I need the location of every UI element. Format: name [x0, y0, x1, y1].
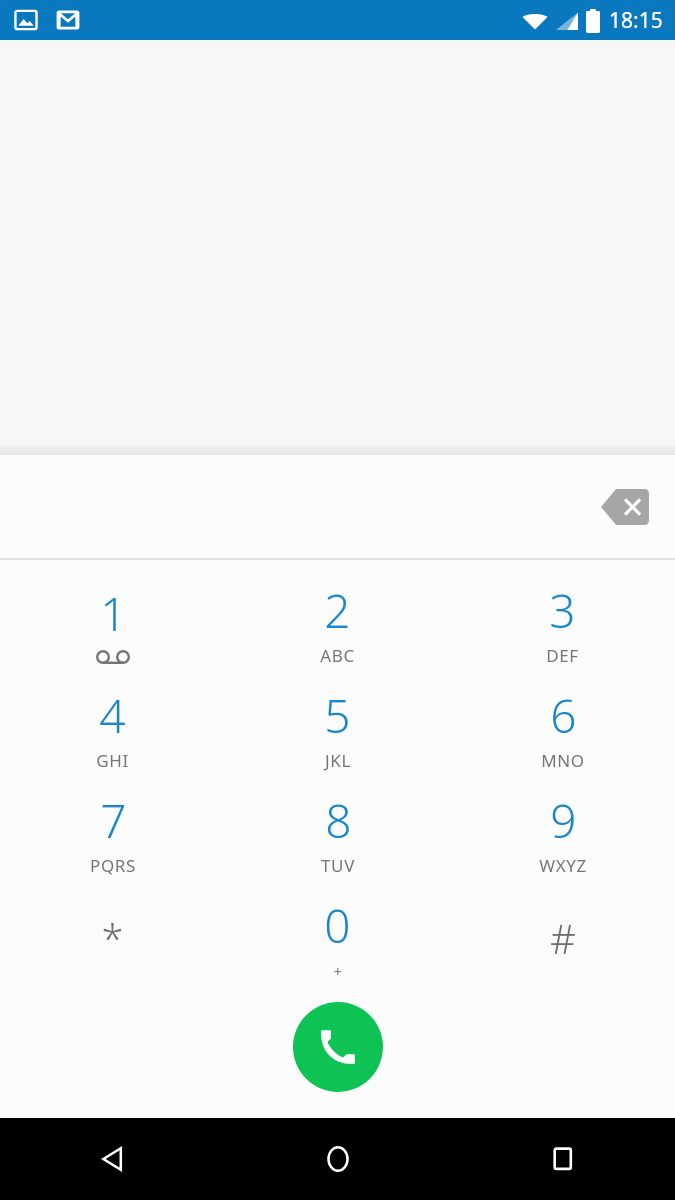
button[interactable]: 4 [0, 675, 225, 780]
button[interactable]: Backspace [593, 478, 657, 536]
button[interactable]: Recent apps [450, 1118, 675, 1200]
button[interactable]: 9 [450, 780, 675, 885]
staticText: 18:15 [609, 6, 663, 35]
staticText: 6 [550, 684, 577, 747]
staticText: WXYZ [539, 854, 587, 877]
staticText: + [333, 961, 343, 981]
button[interactable]: 8 [225, 780, 450, 885]
staticText: 3 [549, 579, 576, 642]
staticText: 9 [550, 789, 577, 852]
button[interactable]: 6 [450, 675, 675, 780]
staticText: 7 [100, 789, 127, 852]
staticText: ABC [320, 644, 355, 667]
staticText: 8 [325, 789, 352, 852]
button[interactable]: 5 [225, 675, 450, 780]
staticText: GHI [96, 749, 129, 772]
staticText: * [101, 911, 124, 965]
staticText: MNO [541, 749, 585, 772]
button[interactable]: 7 [0, 780, 225, 885]
button[interactable]: 2 [225, 570, 450, 675]
staticText: TUV [321, 854, 355, 877]
button[interactable]: 0 [225, 885, 450, 990]
staticText: JKL [325, 749, 351, 772]
staticText: 2 [324, 579, 351, 642]
button[interactable]: * [0, 885, 225, 990]
button[interactable]: 3 [450, 570, 675, 675]
button[interactable]: Call [293, 1002, 383, 1092]
staticText: PQRS [90, 854, 136, 877]
staticText: 5 [324, 684, 351, 747]
staticText: # [550, 911, 576, 965]
button[interactable]: 1 [0, 570, 225, 675]
button[interactable]: Home [225, 1118, 450, 1200]
button[interactable]: Back [0, 1118, 225, 1200]
button[interactable]: # [450, 885, 675, 990]
staticText: 0 [324, 894, 351, 957]
staticText: DEF [546, 644, 579, 667]
staticText: 1 [100, 582, 127, 645]
staticText: 4 [99, 684, 126, 747]
